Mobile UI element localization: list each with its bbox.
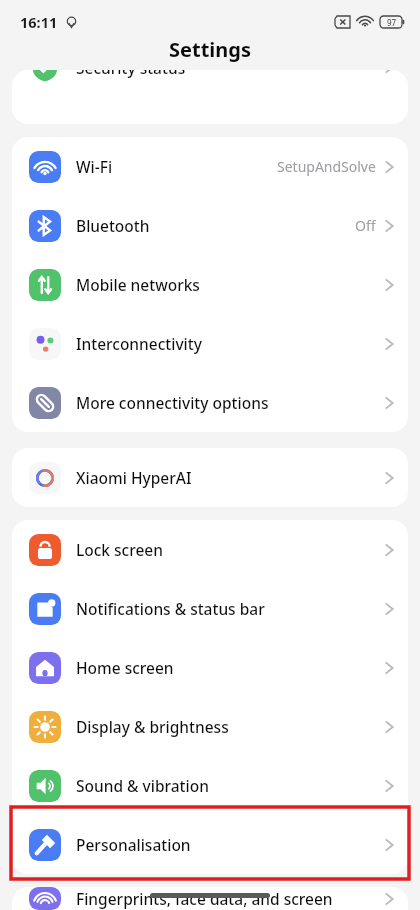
staticText: Personalisation [76, 834, 191, 855]
button[interactable]: Mobile networks [12, 255, 408, 314]
button[interactable]: Security status [12, 70, 408, 94]
staticText: SetupAndSolve [277, 157, 376, 176]
staticText: Mobile networks [76, 274, 200, 295]
button[interactable]: Wi-Fi [12, 137, 408, 196]
staticText: Off [355, 216, 376, 235]
staticText: Xiaomi HyperAI [76, 467, 192, 488]
staticText: Lock screen [76, 539, 163, 560]
staticText: Display & brightness [76, 716, 229, 737]
button[interactable]: Lock screen [12, 520, 408, 579]
staticText: Notifications & status bar [76, 598, 265, 619]
button[interactable]: Home screen [12, 638, 408, 697]
button[interactable]: Xiaomi HyperAI [12, 448, 408, 507]
button[interactable]: Fingerprints, face data, and screen [12, 887, 408, 910]
staticText: Security status [76, 70, 186, 78]
button[interactable]: Display & brightness [12, 697, 408, 756]
button[interactable]: Interconnectivity [12, 314, 408, 373]
staticText: Settings [169, 36, 251, 63]
staticText: Wi-Fi [76, 156, 113, 177]
button[interactable]: Sound & vibration [12, 756, 408, 815]
staticText: 97 [387, 17, 397, 28]
staticText: Bluetooth [76, 215, 150, 236]
staticText: Fingerprints, face data, and screen [76, 888, 333, 909]
staticText: Home screen [76, 657, 174, 678]
button[interactable]: Personalisation [12, 815, 408, 874]
button[interactable]: Bluetooth [12, 196, 408, 255]
staticText: Sound & vibration [76, 775, 209, 796]
button[interactable]: More connectivity options [12, 373, 408, 432]
staticText: More connectivity options [76, 392, 269, 413]
staticText: 16:11 [20, 12, 58, 32]
button[interactable]: Notifications & status bar [12, 579, 408, 638]
staticText: Interconnectivity [76, 333, 202, 354]
